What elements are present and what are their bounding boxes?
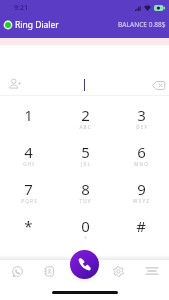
button[interactable]: BALANCE 0.88$ bbox=[118, 20, 166, 29]
staticText: 0 bbox=[81, 216, 90, 236]
staticText: # bbox=[136, 216, 146, 236]
button[interactable]: * bbox=[0, 208, 57, 245]
button[interactable]: Backspace bbox=[146, 73, 169, 97]
button[interactable]: 2 bbox=[57, 97, 113, 134]
staticText: 6 bbox=[137, 142, 146, 162]
staticText: 8 bbox=[81, 179, 90, 199]
button[interactable]: 0 bbox=[57, 208, 113, 245]
button[interactable]: Settings bbox=[106, 259, 130, 283]
button[interactable]: 7 bbox=[0, 171, 57, 208]
button[interactable]: 6 bbox=[113, 134, 169, 171]
staticText: 9 bbox=[137, 179, 146, 199]
staticText: A B C bbox=[79, 124, 91, 130]
staticText: 9:21 bbox=[14, 3, 28, 13]
staticText: 2 bbox=[81, 105, 90, 125]
staticText: D E F bbox=[136, 124, 147, 130]
staticText: 3 bbox=[137, 105, 146, 125]
staticText: 4 bbox=[24, 142, 33, 162]
staticText: P Q R S bbox=[21, 198, 37, 204]
button[interactable]: Ring Dialer bbox=[3, 19, 59, 31]
staticText: J K L bbox=[81, 161, 90, 167]
button[interactable]: 4 bbox=[0, 134, 57, 171]
button[interactable]: Add contact bbox=[3, 72, 27, 96]
staticText: 1 bbox=[24, 105, 33, 125]
staticText: W X Y Z bbox=[133, 198, 149, 204]
button[interactable]: 3 bbox=[113, 97, 169, 134]
button[interactable]: Recent calls bbox=[5, 259, 29, 283]
button[interactable]: 8 bbox=[57, 171, 113, 208]
staticText: G H I bbox=[23, 161, 34, 167]
button[interactable]: Call bbox=[70, 250, 99, 279]
button[interactable]: 9 bbox=[113, 171, 169, 208]
button[interactable]: 1 bbox=[0, 97, 57, 134]
staticText: 7 bbox=[24, 179, 33, 199]
staticText: * bbox=[24, 216, 33, 236]
staticText: + bbox=[84, 235, 87, 241]
staticText: Ring Dialer bbox=[15, 19, 59, 31]
staticText: 5 bbox=[81, 142, 90, 162]
button[interactable]: 5 bbox=[57, 134, 113, 171]
button[interactable]: # bbox=[113, 208, 169, 245]
button[interactable]: Contacts bbox=[36, 259, 60, 283]
staticText: T U V bbox=[79, 198, 91, 204]
button[interactable]: Menu bbox=[140, 259, 164, 283]
staticText: M N O bbox=[134, 161, 148, 167]
